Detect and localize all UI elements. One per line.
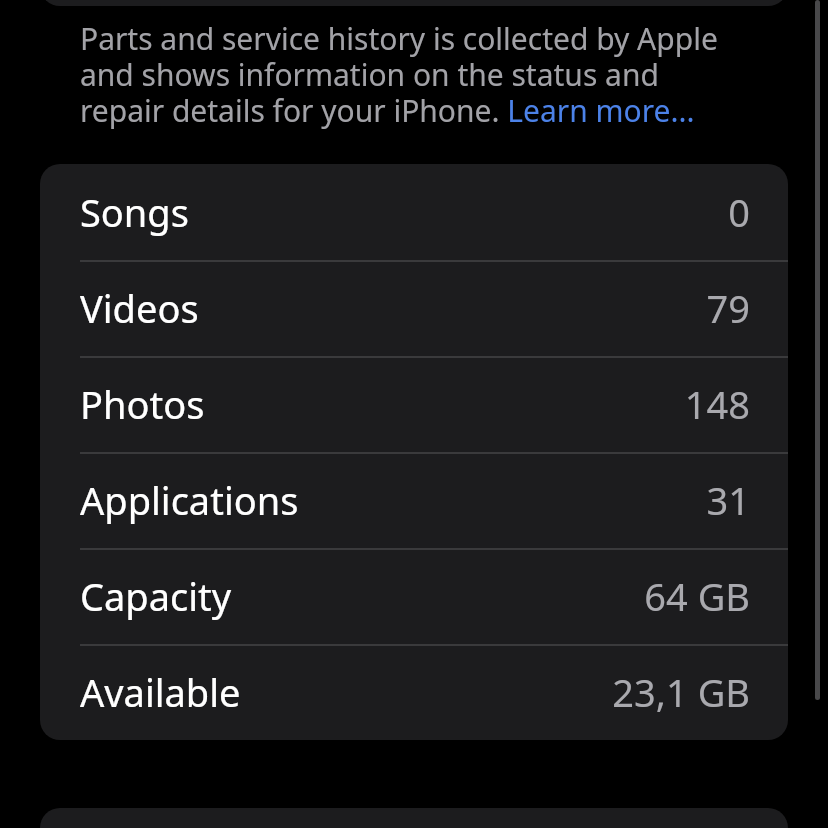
- button[interactable]: Songs: [40, 164, 788, 260]
- staticText: Available: [80, 666, 241, 718]
- button[interactable]: Photos: [40, 356, 788, 452]
- staticText: 31: [706, 474, 750, 526]
- staticText: Songs: [80, 186, 189, 238]
- button[interactable]: Videos: [40, 260, 788, 356]
- staticText: 0: [728, 186, 750, 238]
- staticText: Videos: [80, 282, 199, 334]
- button[interactable]: Parts and service history is collected b…: [80, 18, 744, 131]
- staticText: Capacity: [80, 570, 232, 622]
- button[interactable]: Available: [40, 644, 788, 740]
- staticText: 23,1 GB: [612, 666, 750, 718]
- button[interactable]: [40, 808, 788, 828]
- staticText: Applications: [80, 474, 299, 526]
- staticText: 148: [684, 378, 750, 430]
- staticText: 79: [706, 282, 750, 334]
- button[interactable]: [40, 0, 788, 6]
- staticText: Photos: [80, 378, 205, 430]
- staticText: 64 GB: [644, 570, 750, 622]
- button[interactable]: Capacity: [40, 548, 788, 644]
- button[interactable]: Applications: [40, 452, 788, 548]
- staticText: Parts and service history is collected b…: [80, 18, 744, 131]
